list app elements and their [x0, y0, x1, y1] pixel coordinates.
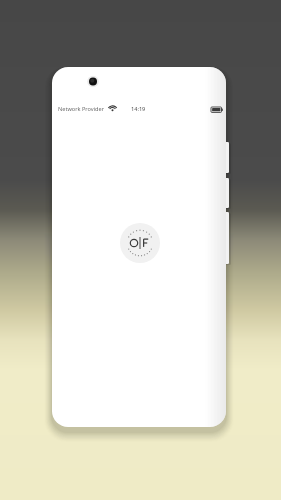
staticText: Network Provider	[58, 105, 105, 113]
button[interactable]: App logo	[120, 223, 160, 263]
staticText: 14:19	[131, 105, 146, 113]
